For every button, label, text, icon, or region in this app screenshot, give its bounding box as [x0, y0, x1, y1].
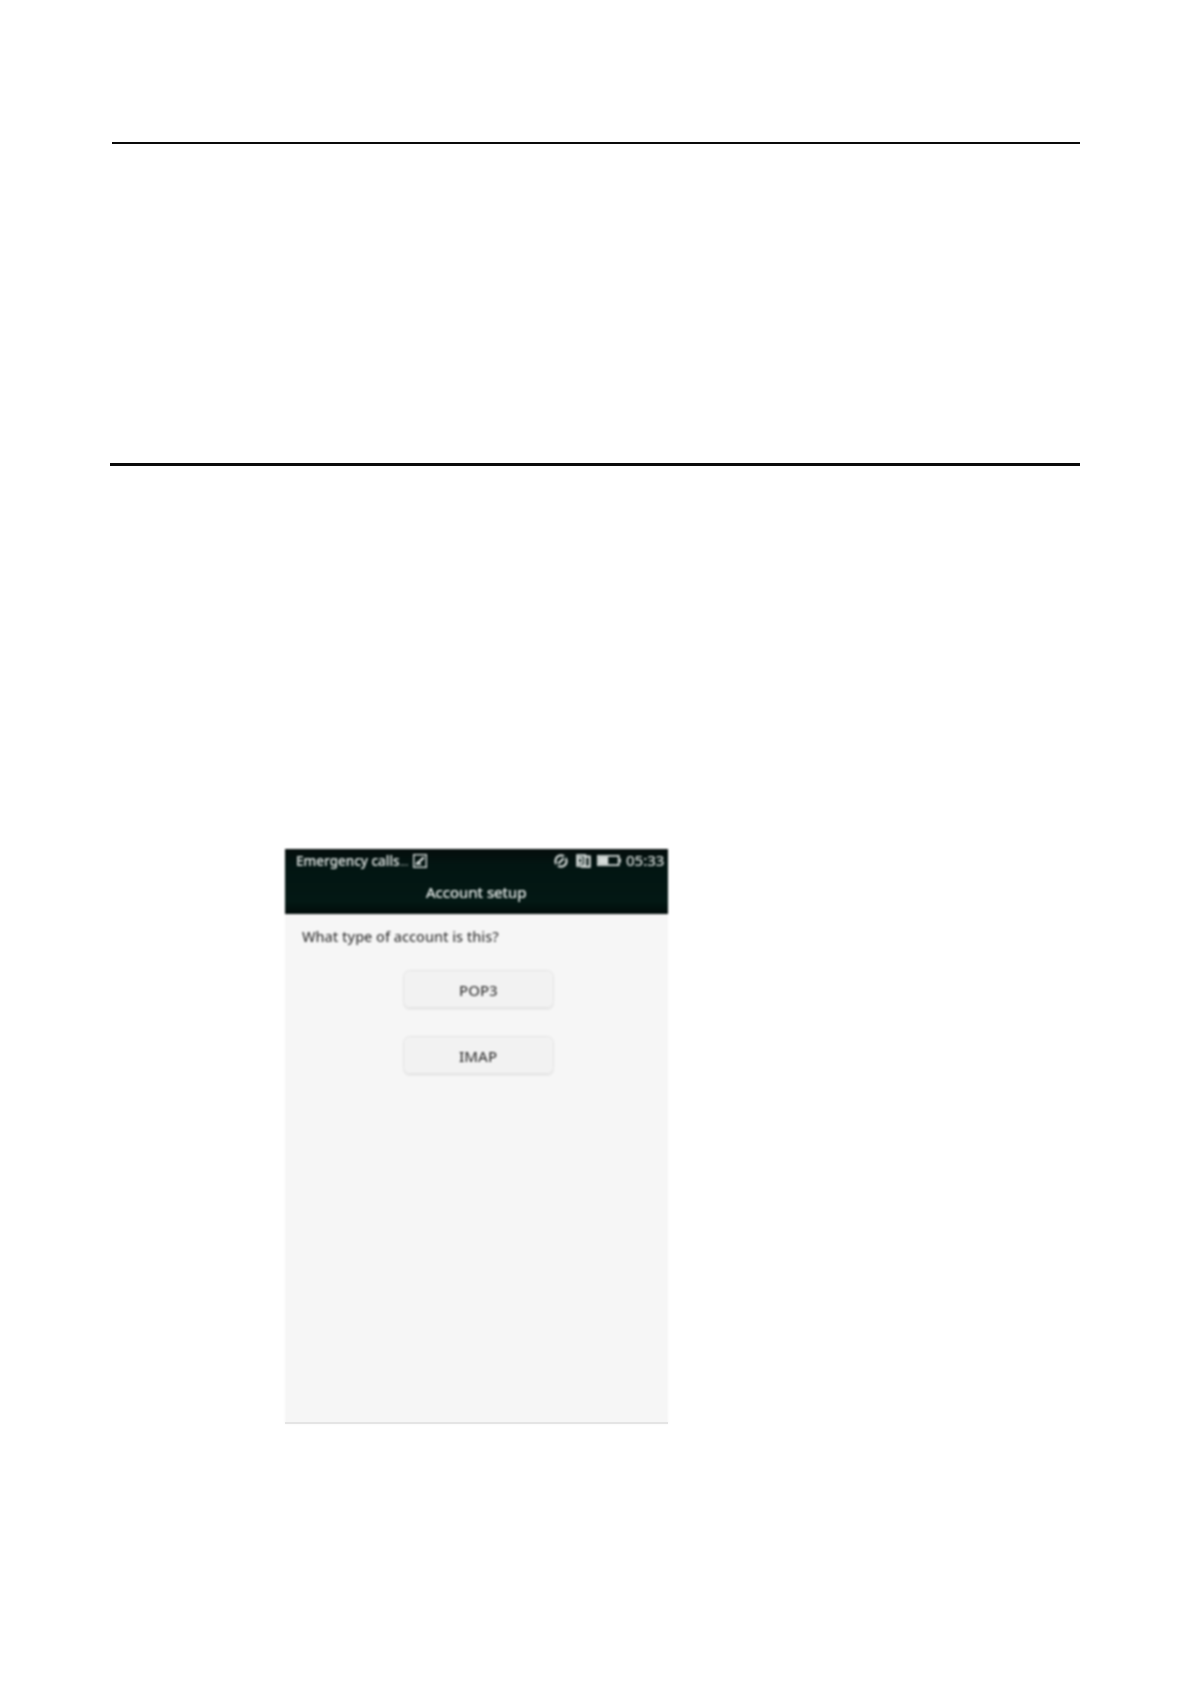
staticText: IMAP: [459, 1046, 498, 1066]
staticText: Account setup: [426, 882, 527, 902]
staticText: ...: [400, 855, 409, 869]
other: Auto rotate: [554, 854, 568, 868]
button[interactable]: IMAP: [403, 1036, 554, 1074]
staticText: POP3: [459, 980, 498, 1000]
button[interactable]: POP3: [403, 970, 554, 1008]
other: Battery: [597, 855, 621, 866]
staticText: What type of account is this?: [302, 927, 499, 947]
staticText: 05:33: [626, 850, 665, 870]
staticText: Emergency calls: [296, 852, 400, 870]
other: Image: [413, 854, 427, 868]
other: Dual SIM: [576, 854, 590, 867]
